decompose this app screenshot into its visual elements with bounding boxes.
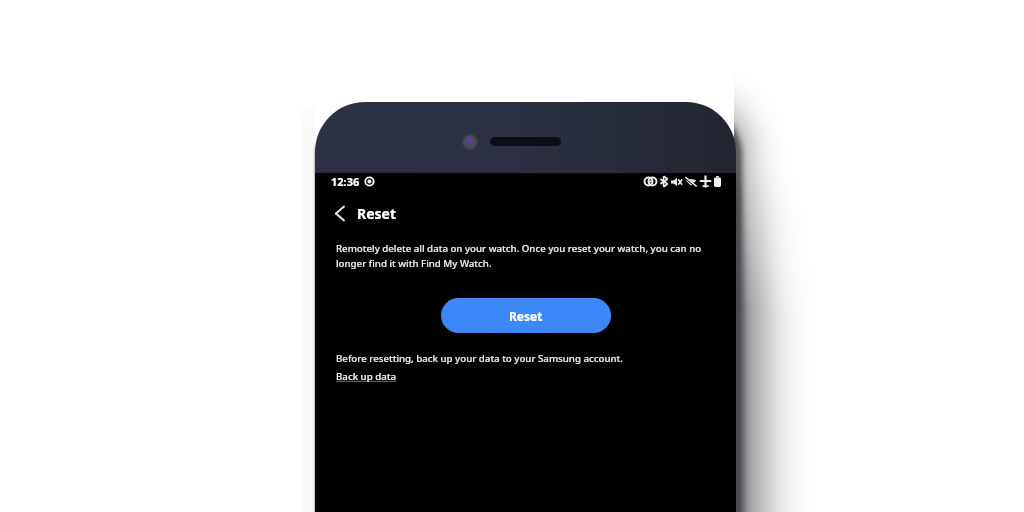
staticText: Remotely delete all data on your watch. …: [336, 242, 702, 255]
staticText: longer find it with Find My Watch.: [336, 257, 492, 270]
staticText: Reset: [357, 204, 397, 223]
button[interactable]: Reset: [441, 298, 611, 333]
staticText: Reset: [509, 308, 543, 324]
button[interactable]: Back: [328, 201, 351, 225]
staticText: Back up data: [336, 370, 396, 383]
staticText: Before resetting, back up your data to y…: [336, 352, 623, 365]
button[interactable]: Back up data: [336, 370, 396, 383]
staticText: 12:36: [331, 174, 360, 189]
